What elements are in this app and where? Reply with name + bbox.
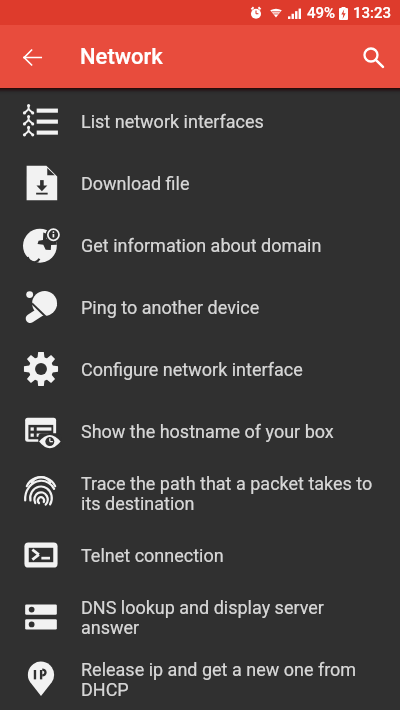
button[interactable]: Release ip and get a new one from DHCP [0, 648, 400, 710]
staticText: Network [80, 44, 163, 70]
staticText: Configure network interface [81, 359, 379, 380]
button[interactable]: Telnet connection [0, 524, 400, 586]
button[interactable]: List network interfaces [0, 90, 400, 152]
button[interactable]: Trace the path that a packet takes to it… [0, 462, 400, 524]
staticText: Get information about domain [81, 235, 379, 256]
staticText: 13:23 [353, 4, 392, 22]
staticText: Release ip and get a new one from DHCP [81, 659, 379, 700]
staticText: Trace the path that a packet takes to it… [81, 473, 379, 514]
button[interactable]: Configure network interface [0, 338, 400, 400]
staticText: DNS lookup and display server answer [81, 597, 379, 638]
staticText: Download file [81, 173, 379, 194]
staticText: Show the hostname of your box [81, 421, 379, 442]
button[interactable]: Download file [0, 152, 400, 214]
button[interactable]: Search [352, 36, 394, 78]
staticText: Telnet connection [81, 545, 379, 566]
button[interactable]: Get information about domain [0, 214, 400, 276]
button[interactable]: Ping to another device [0, 276, 400, 338]
staticText: Ping to another device [81, 297, 379, 318]
button[interactable]: Back [11, 36, 53, 78]
button[interactable]: Show the hostname of your box [0, 400, 400, 462]
staticText: List network interfaces [81, 111, 379, 132]
staticText: 49% [307, 4, 336, 22]
button[interactable]: DNS lookup and display server answer [0, 586, 400, 648]
